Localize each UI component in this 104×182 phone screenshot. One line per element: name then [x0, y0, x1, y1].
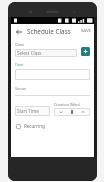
staticText: Recurring	[24, 123, 45, 129]
button[interactable]: Select Class	[15, 49, 77, 57]
staticText: SAVE	[81, 28, 91, 34]
staticText: Date	[15, 62, 24, 67]
staticText: Class	[15, 42, 25, 47]
staticText: Venue	[15, 86, 27, 91]
button[interactable]: Add class	[81, 47, 90, 56]
button[interactable]: Decrease duration	[57, 108, 65, 116]
button[interactable]	[15, 69, 90, 80]
button[interactable]: Start Time	[15, 106, 50, 116]
button[interactable]: Navigate up	[13, 26, 24, 37]
staticText: Duration (Mins)	[54, 102, 81, 107]
button[interactable]: Increase duration	[79, 108, 87, 116]
staticText: Select Class	[17, 50, 42, 56]
button[interactable]: Recurring	[15, 122, 46, 130]
staticText: Schedule Class	[27, 27, 78, 36]
staticText: Start Time	[17, 108, 39, 114]
button[interactable]: SAVE	[78, 25, 94, 37]
